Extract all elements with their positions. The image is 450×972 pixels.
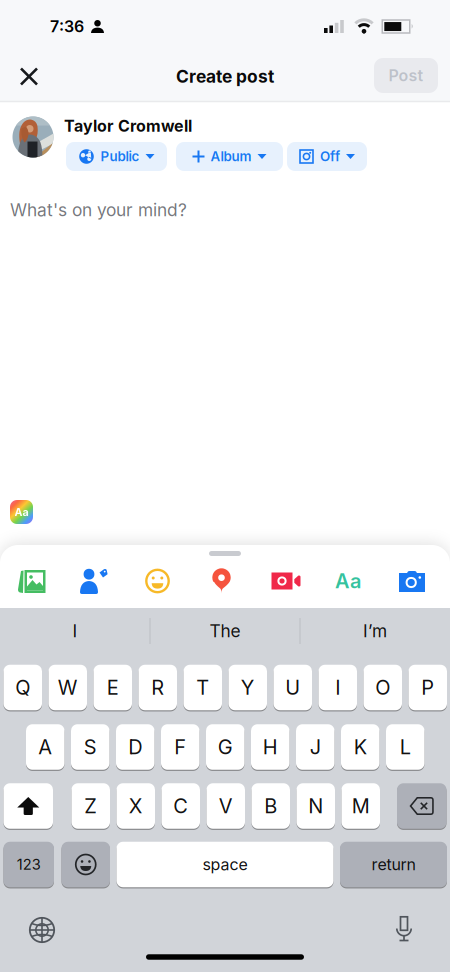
button[interactable]: H: [251, 724, 289, 770]
staticText: E: [107, 676, 119, 699]
button[interactable]: Dictate: [396, 916, 412, 942]
button[interactable]: S: [71, 724, 109, 770]
staticText: Aa: [14, 506, 28, 518]
button[interactable]: I: [318, 665, 357, 710]
staticText: Taylor Cromwell: [64, 117, 192, 135]
staticText: Album: [210, 149, 251, 164]
button[interactable]: C: [161, 783, 200, 829]
button[interactable]: L: [386, 724, 424, 770]
button[interactable]: Off: [287, 142, 367, 171]
staticText: Off: [320, 149, 340, 164]
staticText: 7:36: [50, 17, 84, 36]
button[interactable]: Z: [71, 783, 110, 829]
staticText: X: [129, 794, 143, 818]
staticText: S: [84, 735, 97, 759]
button[interactable]: A: [26, 724, 64, 770]
staticText: Post: [388, 66, 423, 85]
staticText: T: [196, 676, 209, 699]
button[interactable]: Shift: [3, 783, 53, 829]
button[interactable]: Emoji: [61, 842, 110, 887]
staticText: M: [352, 794, 370, 818]
staticText: space: [202, 855, 247, 874]
button[interactable]: V: [206, 783, 245, 829]
button[interactable]: X: [116, 783, 155, 829]
button[interactable]: Next keyboard: [28, 916, 55, 943]
button[interactable]: Tag people: [79, 568, 109, 594]
staticText: V: [219, 794, 233, 818]
button[interactable]: Feeling or activity: [144, 568, 170, 594]
button[interactable]: Q: [3, 665, 42, 710]
staticText: B: [264, 794, 277, 818]
staticText: return: [371, 855, 415, 874]
staticText: The: [209, 621, 240, 641]
staticText: Public: [100, 149, 139, 164]
button[interactable]: F: [161, 724, 199, 770]
staticText: H: [263, 735, 278, 759]
button[interactable]: D: [116, 724, 154, 770]
button[interactable]: return: [340, 842, 447, 887]
button[interactable]: Post background: [10, 500, 33, 524]
button[interactable]: K: [341, 724, 379, 770]
button[interactable]: J: [296, 724, 334, 770]
button[interactable]: Public: [66, 142, 167, 171]
button[interactable]: T: [183, 665, 222, 710]
staticText: W: [58, 676, 78, 699]
button[interactable]: M: [341, 783, 380, 829]
button[interactable]: Post: [374, 58, 438, 93]
button[interactable]: Close: [19, 66, 39, 86]
button[interactable]: The: [155, 611, 295, 651]
staticText: I: [72, 621, 77, 641]
staticText: P: [421, 676, 434, 699]
staticText: D: [128, 735, 142, 759]
button[interactable]: Check in: [211, 568, 231, 594]
staticText: N: [308, 794, 323, 818]
button[interactable]: Live video: [271, 571, 300, 591]
button[interactable]: Y: [228, 665, 267, 710]
staticText: What's on your mind?: [10, 200, 187, 220]
button[interactable]: Photo or video: [16, 567, 46, 595]
staticText: Q: [15, 676, 30, 699]
staticText: C: [173, 794, 188, 818]
button[interactable]: B: [251, 783, 290, 829]
button[interactable]: Camera: [399, 570, 425, 592]
staticText: Z: [84, 794, 97, 818]
button[interactable]: U: [273, 665, 312, 710]
button[interactable]: R: [138, 665, 177, 710]
button[interactable]: Delete: [397, 783, 446, 829]
staticText: G: [218, 735, 233, 759]
staticText: Y: [241, 676, 255, 699]
staticText: A: [38, 735, 52, 759]
button[interactable]: G: [206, 724, 244, 770]
staticText: R: [151, 676, 164, 699]
button[interactable]: P: [408, 665, 447, 710]
button[interactable]: E: [93, 665, 132, 710]
staticText: 123: [17, 856, 41, 873]
staticText: Create post: [176, 66, 274, 87]
staticText: O: [375, 676, 390, 699]
button[interactable]: Album: [176, 142, 283, 171]
staticText: I: [335, 676, 340, 699]
staticText: J: [310, 735, 321, 759]
button[interactable]: N: [296, 783, 335, 829]
staticText: F: [174, 735, 186, 759]
staticText: I’m: [363, 621, 387, 641]
staticText: L: [400, 735, 411, 759]
button[interactable]: O: [363, 665, 402, 710]
button[interactable]: I’m: [305, 611, 445, 651]
button[interactable]: I: [5, 611, 145, 651]
staticText: U: [285, 676, 300, 699]
staticText: Aa: [335, 569, 361, 593]
button[interactable]: Background color: [335, 569, 361, 593]
button[interactable]: space: [116, 842, 333, 887]
staticText: K: [354, 735, 367, 759]
button[interactable]: W: [48, 665, 87, 710]
button[interactable]: 123: [3, 842, 54, 887]
